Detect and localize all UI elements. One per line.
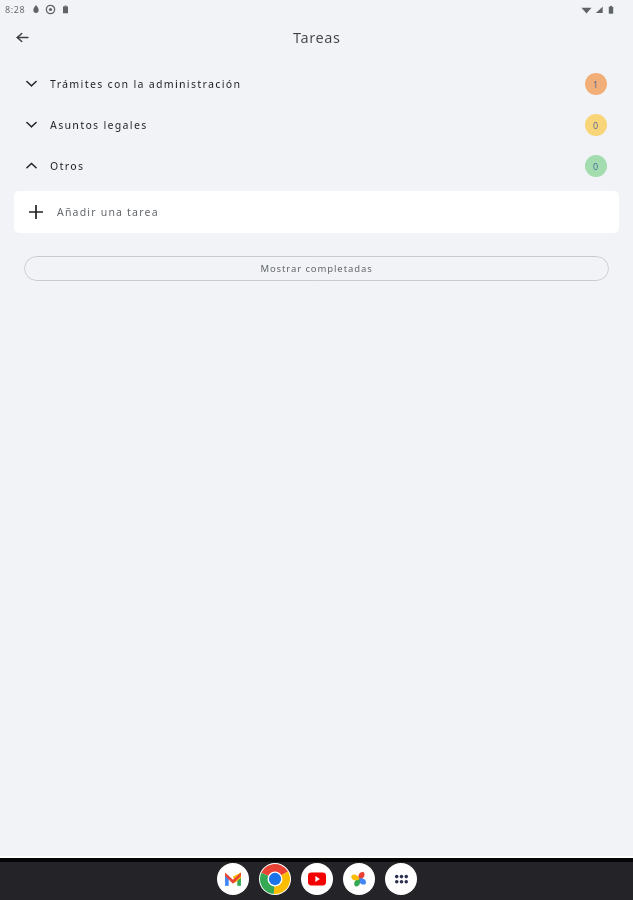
staticText: 0 bbox=[593, 119, 599, 131]
staticText: Añadir una tarea bbox=[57, 205, 159, 219]
button[interactable]: All apps bbox=[385, 863, 417, 895]
button[interactable]: YouTube bbox=[301, 863, 333, 895]
staticText: 1 bbox=[593, 78, 599, 90]
button[interactable]: Back bbox=[7, 22, 37, 52]
staticText: Otros bbox=[50, 159, 85, 173]
button[interactable]: Trámites con la administración bbox=[0, 63, 633, 104]
button[interactable]: Google Photos bbox=[343, 863, 375, 895]
staticText: 8:28 bbox=[5, 3, 26, 15]
button[interactable]: Mostrar completadas bbox=[24, 256, 609, 281]
button[interactable]: Asuntos legales bbox=[0, 104, 633, 145]
button[interactable]: Añadir una tarea bbox=[14, 191, 619, 233]
staticText: Asuntos legales bbox=[50, 118, 148, 132]
button[interactable]: Chrome bbox=[259, 863, 291, 895]
button[interactable]: Gmail bbox=[217, 863, 249, 895]
staticText: Trámites con la administración bbox=[50, 77, 242, 91]
staticText: 0 bbox=[593, 160, 599, 172]
staticText: Tareas bbox=[293, 27, 341, 47]
button[interactable]: Otros bbox=[0, 145, 633, 186]
staticText: Mostrar completadas bbox=[260, 262, 373, 275]
